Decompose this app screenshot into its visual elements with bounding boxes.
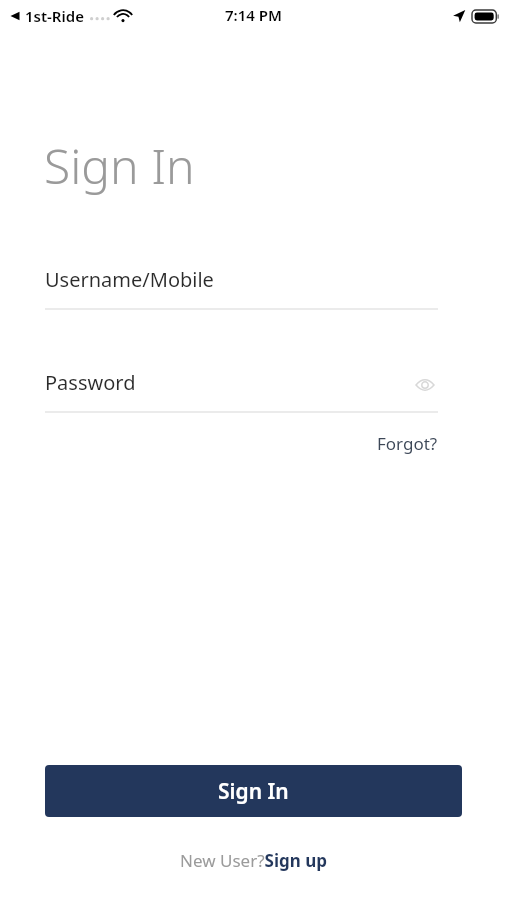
staticText: Username/Mobile: [45, 266, 214, 293]
button[interactable]: Username/Mobile: [45, 266, 438, 310]
staticText: 7:14 PM: [225, 5, 282, 25]
button[interactable]: Show password: [412, 372, 438, 398]
button[interactable]: Forgot?: [350, 428, 438, 458]
staticText: Password: [45, 369, 136, 396]
staticText: Sign In: [44, 133, 195, 198]
button[interactable]: Sign In: [45, 765, 462, 817]
staticText: New User?Sign up: [180, 849, 327, 872]
staticText: Forgot?: [377, 432, 438, 455]
staticText: 1st-Ride: [25, 6, 84, 26]
staticText: Sign In: [218, 777, 289, 806]
button[interactable]: Password: [45, 369, 438, 413]
button[interactable]: New User?Sign up: [180, 849, 327, 872]
